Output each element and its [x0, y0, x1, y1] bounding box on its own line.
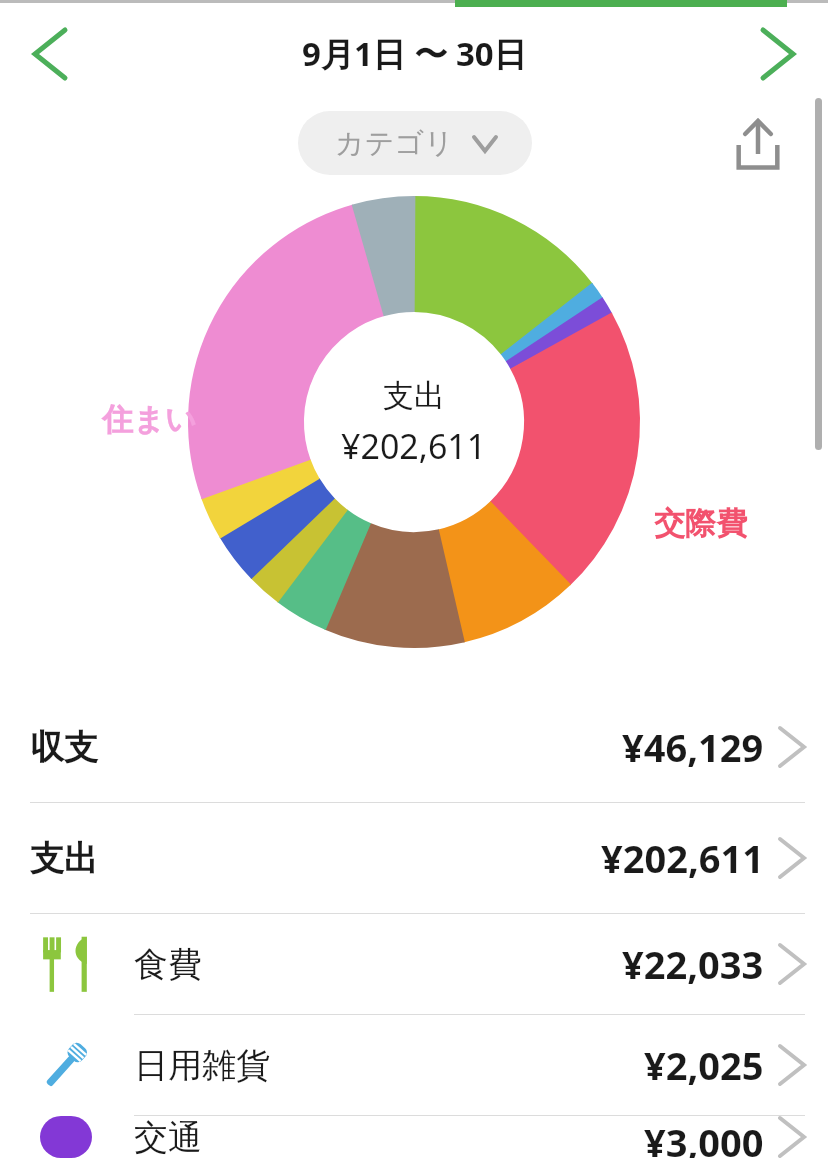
staticText: カテゴリ: [335, 125, 454, 162]
staticText: 9月1日 〜 30日: [302, 31, 527, 76]
staticText: ¥22,033: [622, 938, 764, 990]
staticText: 収支: [30, 726, 98, 769]
staticText: ¥2,025: [644, 1039, 764, 1091]
staticText: 交通: [134, 1116, 202, 1158]
staticText: ¥46,129: [622, 721, 764, 773]
button[interactable]: Next period: [742, 18, 814, 90]
button[interactable]: 日用雑貨: [0, 1015, 828, 1115]
staticText: 支出: [383, 376, 445, 415]
staticText: ¥202,611: [601, 832, 764, 884]
staticText: ¥202,611: [341, 423, 487, 469]
staticText: 食費: [134, 943, 202, 986]
button[interactable]: Share: [722, 108, 794, 180]
button[interactable]: 交通: [0, 1116, 828, 1158]
staticText: 住まい: [102, 400, 197, 439]
button[interactable]: 収支: [0, 692, 828, 802]
button[interactable]: Previous period: [14, 18, 86, 90]
staticText: 日用雑貨: [134, 1044, 270, 1087]
staticText: ¥3,000: [644, 1116, 764, 1158]
staticText: 支出: [30, 837, 98, 880]
button[interactable]: 食費: [0, 914, 828, 1014]
button[interactable]: カテゴリ: [298, 111, 532, 175]
staticText: 交際費: [654, 504, 747, 543]
button[interactable]: 支出: [0, 803, 828, 913]
